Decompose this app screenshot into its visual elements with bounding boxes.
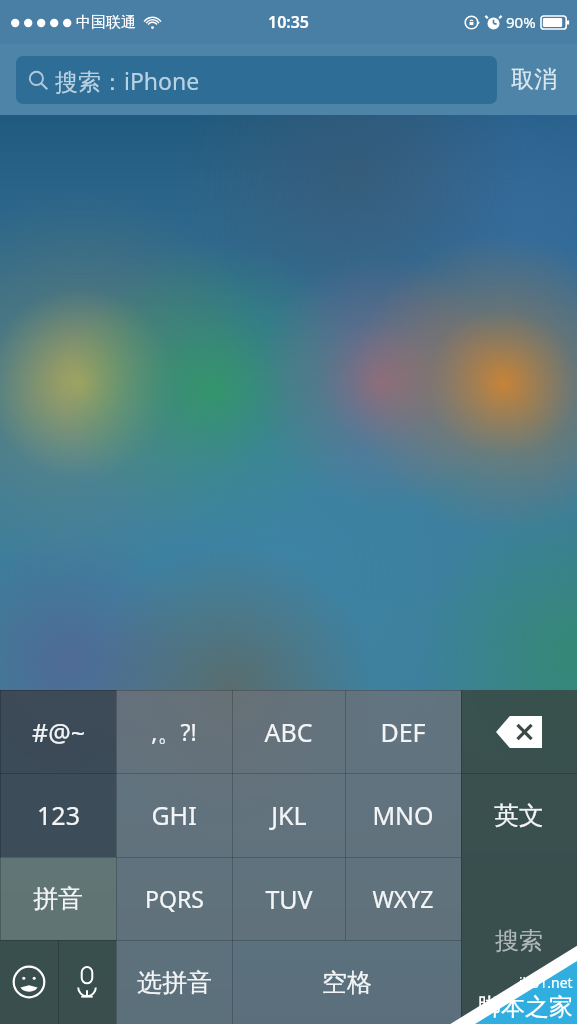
button[interactable]: WXYZ — [345, 857, 461, 940]
staticText: 中国联通 — [76, 13, 136, 32]
staticText: JKL — [271, 798, 307, 832]
staticText: PQRS — [145, 883, 204, 914]
staticText: 脚本之家 — [477, 992, 573, 1022]
button[interactable]: 123 — [0, 773, 116, 857]
staticText: 搜索 — [495, 926, 543, 956]
button[interactable]: 搜索 — [461, 857, 577, 1024]
button[interactable]: 空格 — [232, 940, 461, 1024]
staticText: #@~ — [32, 715, 85, 749]
staticText: 10:35 — [268, 11, 310, 33]
button[interactable]: #@~ — [0, 690, 116, 773]
button[interactable]: TUV — [232, 857, 345, 940]
button[interactable]: Backspace — [461, 690, 577, 773]
button[interactable]: JKL — [232, 773, 345, 857]
button[interactable]: 选拼音 — [116, 940, 232, 1024]
button[interactable]: PQRS — [116, 857, 232, 940]
button[interactable]: Emoji — [0, 940, 58, 1024]
staticText: WXYZ — [372, 883, 434, 914]
staticText: 拼音 — [33, 883, 83, 914]
staticText: ABC — [264, 715, 313, 749]
button[interactable]: ABC — [232, 690, 345, 773]
button[interactable]: ,。?! — [116, 690, 232, 773]
staticText: MNO — [372, 798, 434, 832]
staticText: 搜索：iPhone — [55, 65, 200, 96]
staticText: jb51.net — [519, 973, 573, 992]
staticText: 取消 — [511, 65, 557, 94]
staticText: ,。?! — [151, 716, 197, 747]
button[interactable]: 拼音 — [0, 857, 116, 940]
staticText: DEF — [380, 715, 426, 749]
staticText: 123 — [37, 798, 80, 832]
button[interactable]: 取消 — [507, 57, 561, 102]
button[interactable]: 英文 — [461, 773, 577, 857]
staticText: 选拼音 — [137, 967, 212, 998]
staticText: GHI — [151, 798, 197, 832]
button[interactable]: MNO — [345, 773, 461, 857]
staticText: 90% — [506, 12, 536, 32]
button[interactable]: GHI — [116, 773, 232, 857]
staticText: 空格 — [322, 967, 372, 998]
button[interactable]: DEF — [345, 690, 461, 773]
staticText: TUV — [265, 882, 313, 916]
button[interactable]: 搜索：iPhone — [16, 56, 497, 104]
staticText: 英文 — [494, 800, 544, 831]
button[interactable]: Voice input — [58, 940, 116, 1024]
